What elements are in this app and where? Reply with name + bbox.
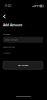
staticText: Add Amount: [3, 23, 22, 27]
button[interactable]: Back: [2, 14, 7, 19]
staticText: Expense mode: [3, 46, 15, 48]
staticText: 9:41: [5, 4, 12, 8]
staticText: Amount: [3, 33, 10, 35]
button[interactable]: Enter amount: [3, 37, 43, 43]
staticText: Enter amount: [5, 38, 18, 41]
staticText: Add Amount: [17, 64, 28, 67]
button[interactable]: Add Amount: [3, 61, 43, 69]
staticText: Income: [3, 52, 10, 54]
